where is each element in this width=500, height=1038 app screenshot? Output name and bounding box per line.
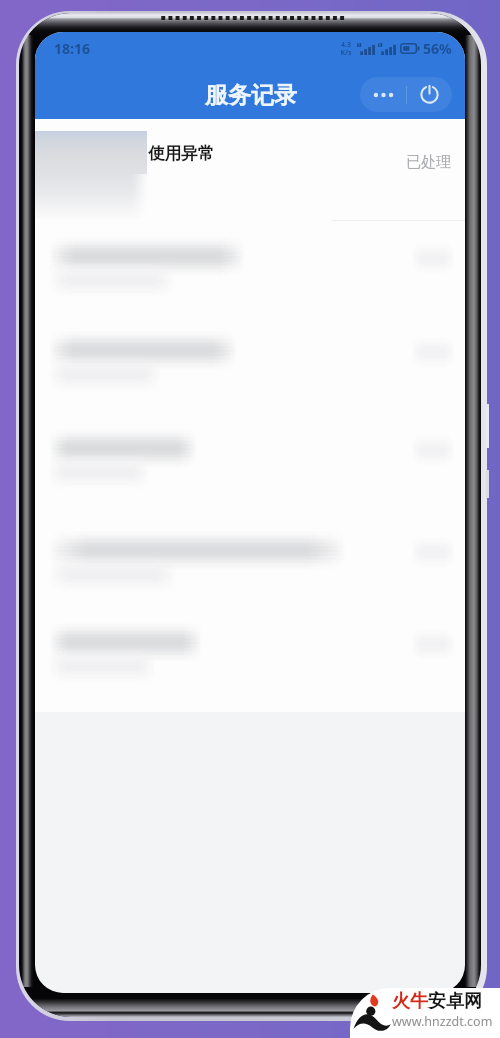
staticText: www.hnzzdt.com bbox=[392, 1013, 493, 1030]
button[interactable] bbox=[35, 329, 465, 424]
staticText: 56% bbox=[423, 39, 452, 58]
button[interactable]: More options bbox=[360, 77, 406, 112]
staticText: 服务记录 bbox=[205, 81, 297, 110]
button[interactable] bbox=[35, 621, 465, 716]
button[interactable]: 使用异常 bbox=[35, 131, 465, 220]
button[interactable]: Power bbox=[407, 77, 452, 112]
staticText: 火牛 bbox=[392, 990, 428, 1013]
button[interactable] bbox=[35, 427, 465, 522]
staticText: 4.3 K/s bbox=[340, 40, 352, 57]
staticText: 安卓网 bbox=[428, 990, 482, 1013]
staticText: 18:16 bbox=[54, 39, 90, 58]
staticText: 已处理 bbox=[406, 153, 451, 172]
button[interactable] bbox=[35, 235, 465, 330]
button[interactable] bbox=[35, 529, 465, 624]
staticText: 使用异常 bbox=[148, 143, 214, 164]
